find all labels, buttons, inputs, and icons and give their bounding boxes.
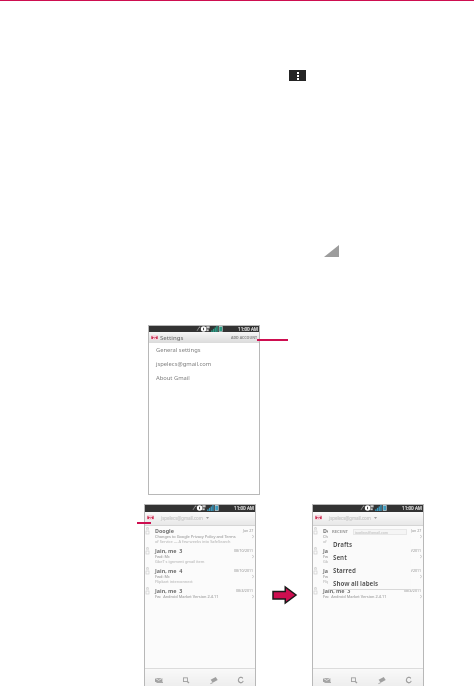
button[interactable]: jspelecs@gmail.com bbox=[148, 357, 260, 371]
button[interactable]: Sent bbox=[333, 550, 411, 563]
button[interactable]: Refresh bbox=[397, 669, 421, 686]
staticText: Flipkart interconnect bbox=[323, 579, 361, 584]
button[interactable]: Starred bbox=[333, 563, 411, 576]
button[interactable]: Jain, me 4 bbox=[144, 566, 256, 586]
staticText: jspelecs@gmail.com bbox=[353, 530, 389, 535]
staticText: Jan 27 bbox=[243, 528, 254, 533]
button[interactable]: Compose bbox=[315, 669, 339, 686]
staticText: Jain, me 4 bbox=[155, 567, 183, 574]
staticText: Flipkart interconnect bbox=[155, 579, 193, 584]
button[interactable]: Show all labels bbox=[333, 576, 411, 589]
staticText: 08/4/2011 bbox=[236, 588, 254, 593]
staticText: Settings bbox=[160, 334, 184, 342]
staticText: 11:00 AM bbox=[402, 505, 423, 511]
staticText: 08/10/2011 bbox=[402, 548, 422, 553]
staticText: Sent bbox=[333, 553, 347, 561]
staticText: Jain, me 4 bbox=[323, 567, 351, 574]
button[interactable]: Labels bbox=[202, 669, 226, 686]
button[interactable]: Doogle bbox=[144, 526, 256, 546]
staticText: 08/10/2011 bbox=[234, 548, 254, 553]
staticText: Fwd: Mr. bbox=[323, 574, 339, 579]
staticText: Show all labels bbox=[333, 579, 379, 587]
staticText: of Service — A few weeks into SafeSearch bbox=[155, 539, 231, 544]
staticText: 11:00 AM bbox=[238, 326, 259, 332]
button[interactable]: Jain, me 3 bbox=[144, 546, 256, 566]
staticText: Fwd: Mr. bbox=[155, 574, 171, 579]
button[interactable]: jspelecs@gmail.com bbox=[329, 515, 377, 521]
staticText: Jan 27 bbox=[411, 528, 422, 533]
staticText: jspelecs@gmail.com bbox=[156, 360, 212, 368]
button[interactable]: jspelecs@gmail.com bbox=[161, 515, 209, 521]
button[interactable]: Search bbox=[174, 669, 198, 686]
staticText: Fwd: Mr. bbox=[323, 554, 339, 559]
staticText: jspelecs@gmail.com bbox=[161, 515, 203, 521]
staticText: 11:00 AM bbox=[234, 505, 255, 511]
staticText: Drafts bbox=[333, 540, 353, 548]
staticText: Changes to Google Privacy Policy and Ter… bbox=[155, 534, 236, 539]
staticText: Fw: Android Market Version 2.4.11 bbox=[155, 594, 219, 598]
staticText: Fw: Android Market Version 2.4.11 bbox=[323, 594, 387, 598]
staticText: Jain, me 3 bbox=[323, 587, 351, 594]
staticText: RECENT bbox=[332, 529, 348, 535]
staticText: 08/4/2011 bbox=[404, 588, 422, 593]
staticText: 08/10/2011 bbox=[234, 568, 254, 573]
button[interactable]: Compose bbox=[147, 669, 171, 686]
staticText: General settings bbox=[156, 346, 201, 354]
button[interactable]: Search bbox=[342, 669, 366, 686]
staticText: GbeT s ignment gmail item bbox=[323, 559, 373, 564]
staticText: Doogle bbox=[155, 527, 174, 534]
button[interactable]: Jain, me 3 bbox=[312, 546, 424, 566]
button[interactable]: More options bbox=[289, 70, 306, 81]
button[interactable]: Jain, me 3 bbox=[144, 586, 256, 598]
staticText: 08/10/2011 bbox=[402, 568, 422, 573]
staticText: Fwd: Mr. bbox=[155, 554, 171, 559]
staticText: About Gmail bbox=[156, 374, 190, 382]
staticText: Doogle bbox=[323, 527, 342, 534]
button[interactable]: Drafts bbox=[333, 537, 411, 550]
staticText: Jain, me 3 bbox=[323, 547, 351, 554]
button[interactable]: About Gmail bbox=[148, 371, 260, 385]
button[interactable]: Refresh bbox=[229, 669, 253, 686]
button[interactable]: Jain, me 3 bbox=[312, 586, 424, 598]
button[interactable]: General settings bbox=[148, 343, 260, 357]
staticText: Jain, me 3 bbox=[155, 547, 183, 554]
button[interactable]: Labels bbox=[370, 669, 394, 686]
button[interactable]: Jain, me 4 bbox=[312, 566, 424, 586]
staticText: jspelecs@gmail.com bbox=[329, 515, 371, 521]
staticText: ADD ACCOUNT bbox=[231, 335, 258, 340]
staticText: Jain, me 3 bbox=[155, 587, 183, 594]
staticText: GbeT s ignment gmail item bbox=[155, 559, 205, 564]
staticText: Changes to Google Privacy Policy and Ter… bbox=[323, 534, 404, 539]
staticText: of Service — A few weeks into SafeSearch bbox=[323, 539, 399, 544]
staticText: Starred bbox=[333, 566, 356, 574]
button[interactable]: Doogle bbox=[312, 526, 424, 546]
